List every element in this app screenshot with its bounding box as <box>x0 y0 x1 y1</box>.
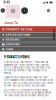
staticText: Adaptive noise cancellation reads the ro… <box>3 76 52 87</box>
staticText: PRODUCT DETAILS <box>6 28 33 31</box>
staticText: Product Details <box>3 55 29 59</box>
staticText: Jump To <box>4 21 18 25</box>
staticText: 9:41 <box>3 1 9 4</box>
staticText: SPECIFICATIONS <box>6 33 31 36</box>
button[interactable]: SPECIFICATIONS <box>0 32 56 37</box>
button[interactable]: PRODUCT DETAILS <box>0 26 56 32</box>
button[interactable]: CARE <box>0 47 56 51</box>
staticText: SHIPPING <box>6 43 20 46</box>
staticText: Thirty hours of listening on a single ch… <box>3 88 51 97</box>
button[interactable]: REVIEWS <box>0 37 56 42</box>
staticText: CARE <box>6 48 14 51</box>
staticText: REVIEWS <box>6 38 20 41</box>
button[interactable]: SHIPPING <box>0 42 56 47</box>
staticText: Crafted for all-day comfort, these over-… <box>3 61 50 74</box>
